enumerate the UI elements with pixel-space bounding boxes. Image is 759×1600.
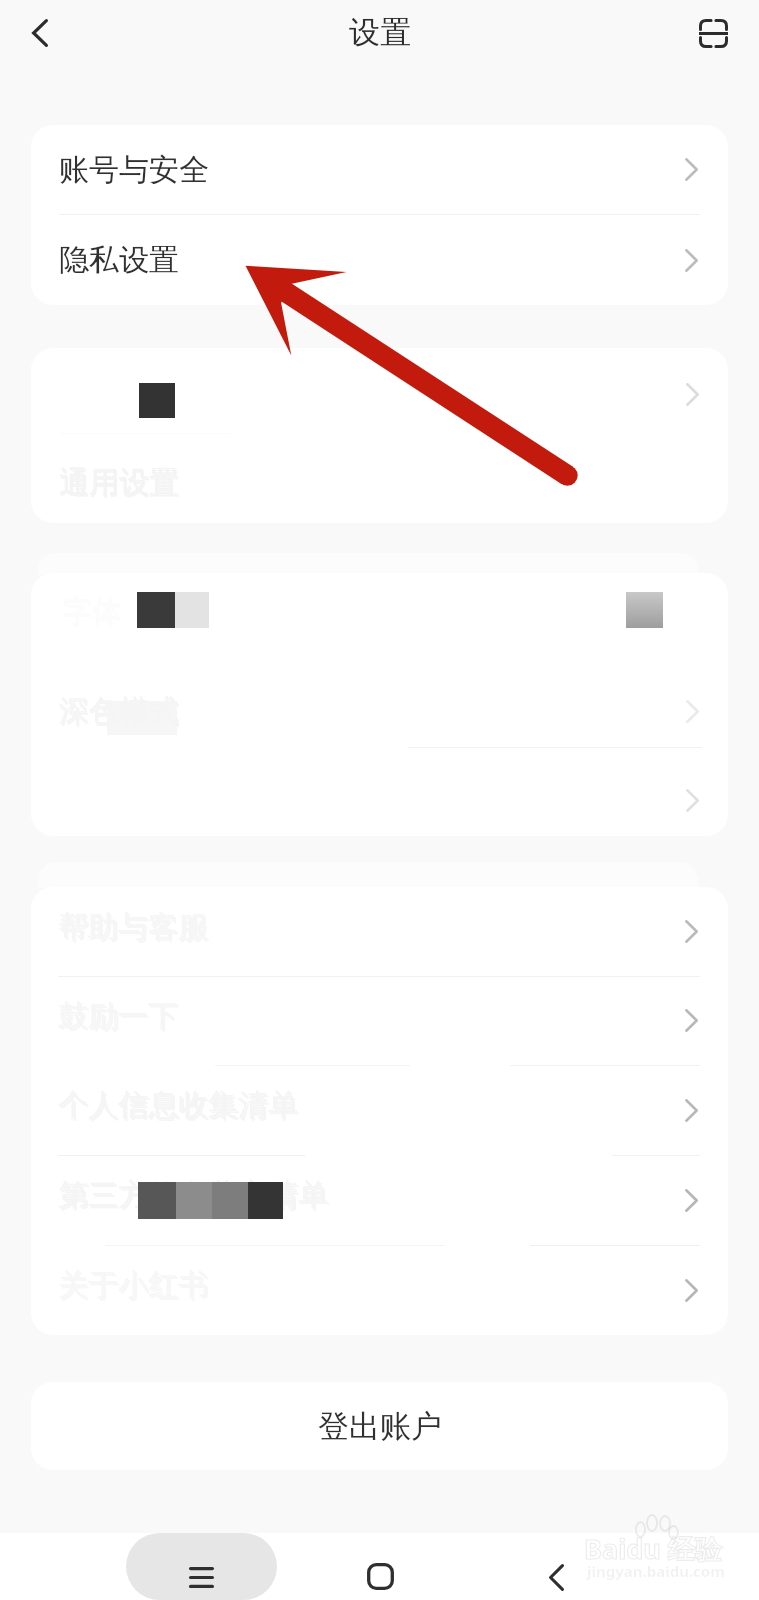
button[interactable]: 隐私设置	[31, 215, 728, 305]
staticText: 关于小红书	[60, 1268, 210, 1306]
staticText: 关于小红书	[58, 1266, 208, 1304]
staticText: Baidu 经验	[584, 1530, 722, 1567]
staticText: 账号与安全	[59, 151, 209, 189]
button[interactable]: Back	[12, 5, 68, 61]
button[interactable]: Recent apps	[126, 1533, 277, 1600]
staticText: 通用设置	[59, 463, 179, 501]
staticText: 第三方信息共享清单	[58, 1176, 328, 1214]
staticText: 深色模式	[60, 694, 180, 732]
button[interactable]: Home	[352, 1533, 408, 1600]
button[interactable]: 登出账户	[31, 1382, 728, 1470]
staticText: 深色模式	[59, 692, 179, 730]
button[interactable]: 关于小红书	[31, 1245, 728, 1335]
staticText: 帮助与客服	[60, 910, 210, 948]
button[interactable]: Back	[528, 1533, 584, 1600]
staticText: 登出账户	[318, 1407, 442, 1446]
staticText: jingyan.baidu.com	[587, 1561, 725, 1581]
staticText: 通用设置	[60, 465, 180, 503]
staticText: 个人信息收集清单	[60, 1088, 300, 1126]
button[interactable]: 账号与安全	[31, 125, 728, 214]
button[interactable]: 第三方信息共享清单	[31, 1155, 728, 1245]
staticText: 个人信息收集清单	[58, 1086, 298, 1124]
staticText: 鼓励一下	[58, 997, 178, 1035]
button[interactable]: Scan QR code	[685, 5, 741, 61]
staticText: 第三方信息共享清单	[60, 1178, 330, 1216]
button[interactable]: 个人信息收集清单	[31, 1065, 728, 1155]
staticText: 设置	[349, 13, 411, 52]
staticText: 帮助与客服	[58, 908, 208, 946]
staticText: 隐私设置	[59, 241, 179, 279]
button[interactable]: 鼓励一下	[31, 976, 728, 1065]
staticText: 鼓励一下	[60, 999, 180, 1037]
